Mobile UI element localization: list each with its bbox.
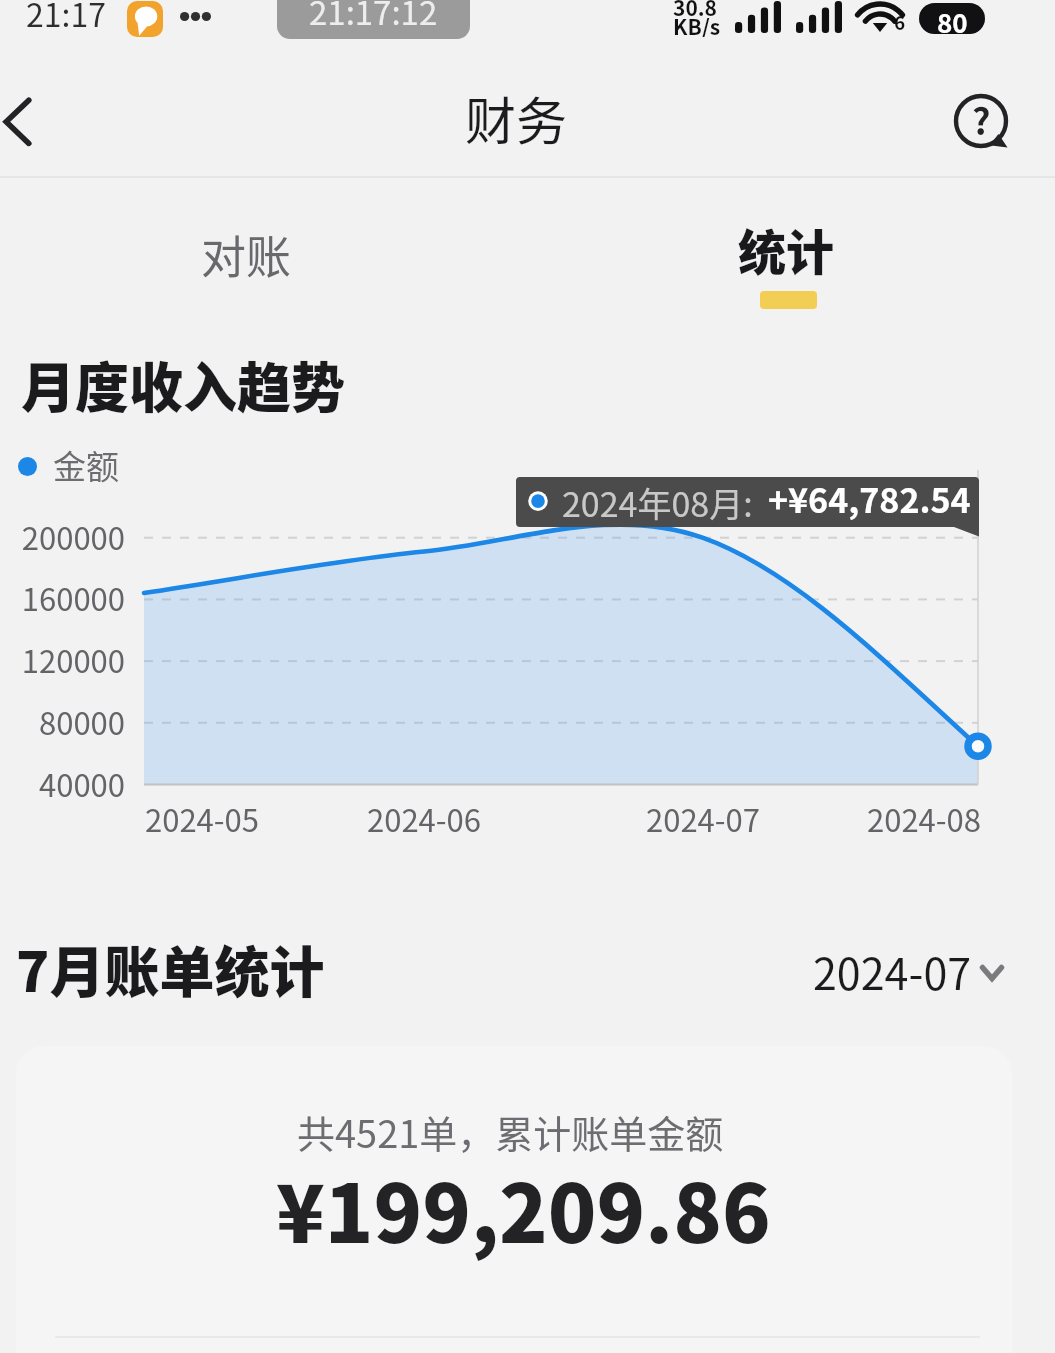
staticText: 30.8 bbox=[673, 0, 717, 22]
staticText: 统计 bbox=[738, 214, 835, 284]
staticText: 80000 bbox=[38, 699, 125, 744]
staticText: 80 bbox=[937, 3, 968, 34]
staticText: 160000 bbox=[21, 575, 125, 620]
staticText: 2024-07 bbox=[813, 940, 972, 1002]
staticText: 200000 bbox=[21, 514, 125, 559]
staticText: 月度收入趋势 bbox=[21, 345, 345, 423]
staticText: 21:17 bbox=[26, 0, 106, 36]
staticText: 6 bbox=[894, 8, 906, 36]
staticText: 21:17:12 bbox=[309, 0, 438, 35]
staticText: ¥199,209.86 bbox=[276, 1150, 771, 1266]
staticText: 2024-05 bbox=[92, 796, 312, 841]
button[interactable]: 对账 bbox=[140, 196, 351, 314]
staticText: KB/s bbox=[673, 11, 721, 37]
staticText: +¥64,782.54 bbox=[768, 474, 971, 523]
button[interactable]: 2024-07 bbox=[800, 936, 1020, 1002]
staticText: 财务 bbox=[465, 81, 568, 155]
staticText: 对账 bbox=[201, 222, 292, 287]
staticText: 120000 bbox=[21, 637, 125, 682]
staticText: 7月账单统计 bbox=[16, 928, 325, 1008]
staticText: 2024-06 bbox=[314, 796, 534, 841]
staticText: 40000 bbox=[38, 761, 125, 806]
staticText: 2024-07 bbox=[593, 796, 813, 841]
button[interactable]: 统计 bbox=[680, 196, 892, 324]
staticText: ? bbox=[972, 93, 991, 145]
button[interactable]: Back bbox=[0, 83, 76, 159]
staticText: 金额 bbox=[53, 441, 119, 489]
staticText: 2024年08月: bbox=[562, 478, 753, 527]
staticText: 共4521单，累计账单金额 bbox=[297, 1104, 724, 1159]
button[interactable]: Help bbox=[949, 89, 1013, 153]
staticText: 2024-08 bbox=[814, 796, 1034, 841]
